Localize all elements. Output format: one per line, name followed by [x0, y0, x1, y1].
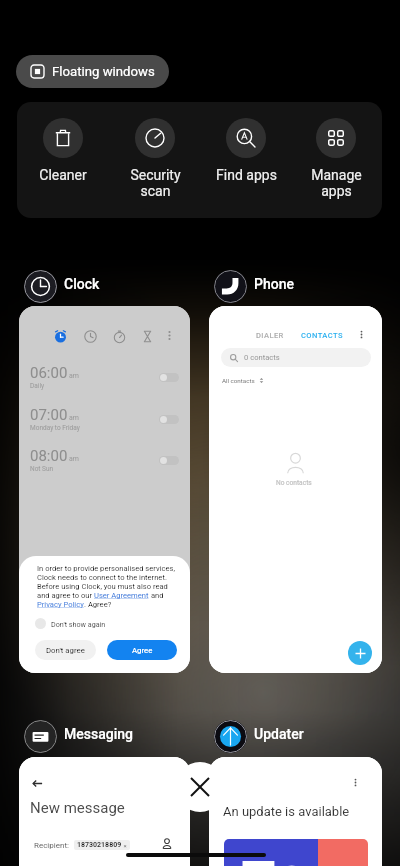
staticText: 07:00	[30, 406, 68, 424]
button[interactable]: DIALER	[209, 306, 382, 673]
staticText: Not Sun	[30, 465, 54, 473]
staticText: User Agreement	[94, 591, 149, 600]
staticText: Messaging	[64, 726, 133, 742]
button[interactable]: All contacts	[220, 375, 266, 386]
staticText: Monday to Friday	[30, 424, 80, 432]
button[interactable]: Alarm	[54, 330, 67, 343]
staticText: am	[69, 455, 79, 463]
button[interactable]: More options	[351, 778, 360, 787]
staticText: and	[149, 591, 164, 600]
button[interactable]: Cleaner	[26, 102, 100, 183]
button[interactable]: Don't agree	[35, 640, 96, 660]
staticText: Security scan	[130, 167, 181, 199]
staticText: Find apps	[216, 167, 277, 183]
staticText: Privacy Policy	[37, 600, 84, 609]
staticText: am	[69, 414, 79, 422]
staticText: 06:00	[30, 364, 68, 382]
button[interactable]: CONTACTS	[298, 328, 346, 343]
button[interactable]: Add contact	[348, 641, 372, 665]
staticText: . Agree?	[84, 600, 112, 609]
button[interactable]: 06:00	[19, 360, 190, 394]
button[interactable]: Stopwatch	[113, 330, 126, 343]
staticText: Don't show again	[51, 620, 106, 628]
button[interactable]: Back	[19, 757, 190, 866]
button[interactable]: Manage apps	[299, 102, 373, 199]
button[interactable]: 08:00	[19, 443, 190, 477]
staticText: Cleaner	[39, 167, 87, 183]
staticText: Manage apps	[311, 167, 362, 199]
button[interactable]: Alarm toggle	[159, 415, 179, 424]
staticText: All contacts	[222, 377, 255, 384]
button[interactable]: Alarm toggle	[159, 373, 179, 382]
staticText: An update is available	[223, 804, 350, 819]
staticText: New message	[30, 799, 125, 817]
staticText: Don't agree	[46, 646, 85, 655]
button[interactable]: Security scan	[118, 102, 192, 199]
staticText: ×	[122, 842, 127, 849]
staticText: Floating windows	[52, 64, 155, 79]
button[interactable]: Don't show again	[35, 618, 106, 629]
staticText: CONTACTS	[301, 331, 343, 340]
staticText: DIALER	[256, 331, 284, 340]
staticText: Agree	[132, 646, 153, 655]
button[interactable]: Agree	[107, 640, 177, 660]
staticText: No contacts	[276, 479, 312, 487]
button[interactable]: DIALER	[253, 328, 287, 343]
button[interactable]: Close all	[175, 762, 225, 812]
button[interactable]: Choose contact	[161, 838, 173, 850]
button[interactable]: Floating windows	[16, 55, 169, 88]
button[interactable]: Find apps	[209, 102, 283, 183]
button[interactable]: World clock	[84, 330, 97, 343]
button[interactable]: Alarm toggle	[159, 456, 179, 465]
staticText: 0 contacts	[244, 353, 280, 362]
staticText: Updater	[254, 726, 304, 742]
button[interactable]: Alarm	[19, 306, 190, 673]
staticText: Clock needs to connect to the internet.	[37, 573, 167, 582]
staticText: am	[69, 372, 79, 380]
staticText: Before using Clock, you must also read	[37, 582, 168, 591]
button[interactable]: 07:00	[19, 402, 190, 436]
button[interactable]: 0 contacts	[221, 348, 371, 367]
staticText: and agree to our	[37, 591, 94, 600]
button[interactable]: More options	[164, 330, 175, 341]
staticText: Clock	[64, 276, 100, 292]
staticText: Phone	[254, 276, 294, 292]
button[interactable]: More options	[357, 330, 366, 339]
staticText: In order to provide personalised service…	[37, 564, 175, 573]
staticText: 18730218809	[77, 841, 122, 849]
button[interactable]: Timer	[141, 330, 154, 343]
staticText: Daily	[30, 382, 45, 390]
staticText: Recipient:	[34, 841, 69, 850]
button[interactable]: Back	[32, 778, 43, 789]
button[interactable]: More options	[209, 757, 382, 866]
staticText: 08:00	[30, 447, 68, 465]
